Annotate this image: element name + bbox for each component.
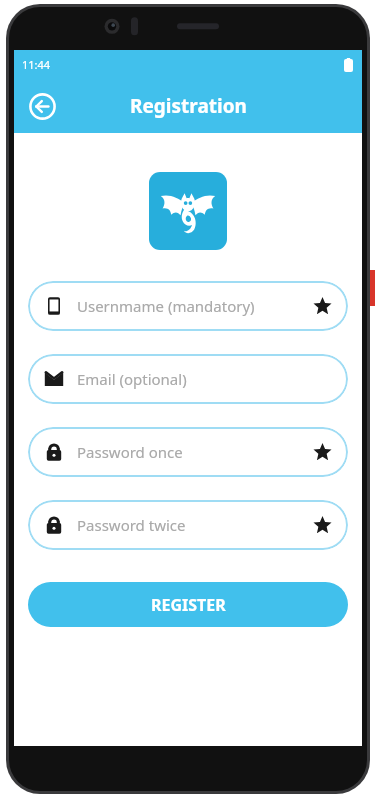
button[interactable]: REGISTER <box>28 582 348 627</box>
staticText: 11:44 <box>22 57 51 72</box>
staticText: Password twice <box>77 515 313 535</box>
button[interactable]: Usernmame (mandatory) <box>28 281 348 331</box>
staticText: Password once <box>77 442 313 462</box>
staticText: Usernmame (mandatory) <box>77 296 313 316</box>
button[interactable]: Back <box>23 87 61 125</box>
button[interactable]: Password twice <box>28 500 348 550</box>
staticText: Email (optional) <box>77 369 332 389</box>
staticText: REGISTER <box>151 594 226 616</box>
button[interactable]: Email (optional) <box>28 354 348 404</box>
button[interactable]: Password once <box>28 427 348 477</box>
staticText: Registration <box>130 93 247 119</box>
